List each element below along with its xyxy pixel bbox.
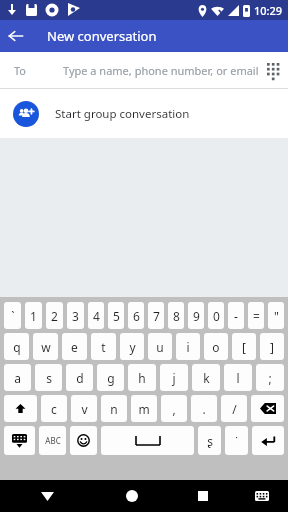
button[interactable]: k [192, 364, 220, 391]
staticText: / [232, 401, 237, 417]
button[interactable]: Start group conversation [0, 89, 288, 138]
staticText: e [71, 339, 78, 355]
button[interactable]: e [62, 333, 87, 360]
button[interactable]: t [91, 333, 116, 360]
button[interactable]: 8 [168, 302, 184, 329]
staticText: j [172, 370, 176, 386]
staticText: o [212, 339, 220, 355]
button[interactable]: enter [252, 426, 284, 455]
button[interactable]: 7 [148, 302, 164, 329]
button[interactable]: c [41, 395, 67, 422]
staticText: y [129, 339, 136, 355]
staticText: q [13, 339, 21, 355]
button[interactable]: emoji [70, 426, 97, 455]
button[interactable]: ] [260, 333, 284, 360]
button[interactable]: . [191, 395, 217, 422]
button[interactable]: Back [0, 20, 32, 52]
button[interactable]: 3 [67, 302, 84, 329]
button[interactable]: [ [232, 333, 256, 360]
staticText: u [156, 339, 164, 355]
button[interactable]: ABC [39, 426, 66, 455]
button[interactable]: n [101, 395, 127, 422]
staticText: k [203, 370, 210, 386]
staticText: d [76, 370, 84, 386]
staticText: v [81, 401, 88, 417]
staticText: a [14, 370, 21, 386]
button[interactable]: = [248, 302, 264, 329]
staticText: 10:29 [254, 3, 283, 18]
button[interactable]: shift [4, 395, 37, 422]
staticText: n [110, 401, 118, 417]
button[interactable]: q [4, 333, 29, 360]
staticText: 4 [93, 308, 100, 324]
staticText: 9 [193, 308, 200, 324]
button[interactable]: i [176, 333, 200, 360]
button[interactable]: - [228, 302, 244, 329]
staticText: 5 [113, 308, 120, 324]
button[interactable]: m [131, 395, 157, 422]
button[interactable]: ; [256, 364, 284, 391]
button[interactable]: / [221, 395, 247, 422]
staticText: t [101, 339, 106, 355]
button[interactable]: l [224, 364, 252, 391]
staticText: 3 [72, 308, 79, 324]
button[interactable]: 9 [188, 302, 204, 329]
button[interactable]: j [160, 364, 188, 391]
button[interactable]: s [35, 364, 62, 391]
button[interactable]: Switch keyboard [236, 480, 288, 512]
button[interactable]: v [71, 395, 97, 422]
staticText: New conversation [47, 27, 157, 45]
staticText: c [51, 401, 57, 417]
staticText: w [41, 339, 51, 355]
staticText: i [186, 339, 190, 355]
button[interactable]: , [161, 395, 187, 422]
button[interactable]: 0 [208, 302, 224, 329]
button[interactable]: ` [4, 302, 21, 329]
staticText: ˙ [235, 433, 238, 449]
staticText: . [202, 401, 206, 417]
button[interactable]: 4 [88, 302, 104, 329]
button[interactable]: Back [0, 480, 95, 512]
staticText: 8 [173, 308, 180, 324]
staticText: ʂ [207, 433, 213, 449]
button[interactable]: 2 [46, 302, 63, 329]
button[interactable]: 5 [108, 302, 124, 329]
staticText: s [46, 370, 52, 386]
staticText: ; [268, 370, 272, 386]
button[interactable]: ʂ [198, 426, 221, 455]
staticText: 7 [153, 308, 160, 324]
staticText: - [234, 308, 238, 324]
button[interactable]: ˙ [225, 426, 248, 455]
staticText: [ [242, 339, 246, 355]
staticText: 0 [213, 308, 220, 324]
button[interactable]: h [128, 364, 156, 391]
button[interactable]: del [251, 395, 284, 422]
staticText: g [107, 370, 115, 386]
button[interactable]: o [204, 333, 228, 360]
button[interactable]: kb [4, 426, 35, 455]
button[interactable]: " [268, 302, 284, 329]
staticText: ABC [45, 435, 61, 446]
button[interactable]: a [4, 364, 31, 391]
button[interactable]: Dialpad [259, 52, 288, 88]
button[interactable]: y [120, 333, 144, 360]
staticText: l [236, 370, 240, 386]
button[interactable]: 1 [25, 302, 42, 329]
staticText: Start group conversation [55, 106, 190, 122]
button[interactable]: Recents [169, 480, 236, 512]
staticText: ` [11, 308, 15, 324]
staticText: 1 [30, 308, 37, 324]
staticText: m [138, 401, 150, 417]
button[interactable]: d [66, 364, 93, 391]
staticText: Type a name, phone number, or email [63, 63, 259, 78]
staticText: h [138, 370, 146, 386]
button[interactable]: u [148, 333, 172, 360]
button[interactable]: w [33, 333, 58, 360]
button[interactable]: Home [95, 480, 169, 512]
staticText: To [14, 63, 27, 78]
staticText: 2 [51, 308, 58, 324]
staticText: " [274, 308, 279, 324]
button[interactable]: space [101, 426, 194, 455]
button[interactable]: g [97, 364, 124, 391]
button[interactable]: 6 [128, 302, 144, 329]
